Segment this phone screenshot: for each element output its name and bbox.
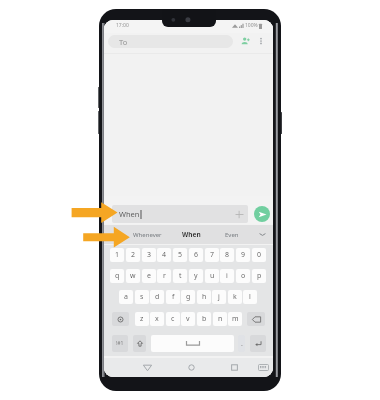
staticText: 5 bbox=[178, 250, 183, 260]
staticText: x bbox=[155, 314, 159, 324]
staticText: 9 bbox=[241, 250, 246, 260]
staticText: z bbox=[140, 314, 144, 324]
button[interactable]: 1 bbox=[110, 248, 124, 262]
staticText: 0 bbox=[257, 250, 262, 260]
button[interactable]: Add recipient bbox=[238, 34, 252, 48]
staticText: 8 bbox=[225, 250, 230, 260]
button[interactable]: shift bbox=[112, 312, 129, 326]
staticText: t bbox=[179, 271, 182, 281]
button[interactable]: dot bbox=[238, 335, 245, 352]
staticText: d bbox=[155, 292, 160, 302]
button[interactable]: Expand suggestions bbox=[256, 225, 269, 244]
button[interactable]: c bbox=[166, 312, 180, 326]
button[interactable]: i bbox=[220, 269, 234, 283]
staticText: m bbox=[232, 314, 239, 324]
button[interactable]: Hide keyboard bbox=[256, 358, 270, 377]
button[interactable]: r bbox=[157, 269, 171, 283]
button[interactable]: 4 bbox=[157, 248, 171, 262]
button[interactable]: 9 bbox=[236, 248, 250, 262]
staticText: When bbox=[182, 230, 201, 239]
staticText: l bbox=[249, 292, 251, 302]
staticText: 17:00 bbox=[116, 22, 129, 29]
button[interactable]: Send bbox=[254, 206, 270, 222]
staticText: When bbox=[119, 209, 140, 219]
button[interactable]: sym bbox=[112, 335, 128, 352]
staticText: c bbox=[171, 314, 175, 324]
staticText: o bbox=[241, 271, 246, 281]
staticText: k bbox=[233, 292, 237, 302]
staticText: 6 bbox=[194, 250, 199, 260]
button[interactable]: x bbox=[150, 312, 164, 326]
button[interactable]: Home bbox=[184, 358, 198, 377]
staticText: j bbox=[218, 292, 220, 302]
button[interactable]: p bbox=[252, 269, 266, 283]
staticText: 4 bbox=[162, 250, 167, 260]
button[interactable]: u bbox=[205, 269, 219, 283]
button[interactable]: More options bbox=[254, 34, 267, 47]
button[interactable]: l bbox=[243, 290, 257, 304]
button[interactable]: k bbox=[228, 290, 242, 304]
staticText: 7 bbox=[210, 250, 215, 260]
button[interactable]: When bbox=[112, 205, 248, 223]
button[interactable]: m bbox=[228, 312, 242, 326]
staticText: w bbox=[130, 271, 136, 281]
staticText: g bbox=[186, 292, 191, 302]
staticText: h bbox=[202, 292, 207, 302]
staticText: b bbox=[202, 314, 207, 324]
button[interactable]: Back bbox=[140, 358, 154, 377]
button[interactable]: q bbox=[110, 269, 124, 283]
button[interactable]: t bbox=[173, 269, 187, 283]
staticText: v bbox=[186, 314, 190, 324]
staticText: 1 bbox=[115, 250, 120, 260]
button[interactable]: d bbox=[150, 290, 164, 304]
button[interactable]: n bbox=[213, 312, 227, 326]
button[interactable]: When bbox=[167, 225, 215, 244]
staticText: s bbox=[140, 292, 144, 302]
button[interactable]: j bbox=[212, 290, 226, 304]
staticText: 100% bbox=[245, 22, 258, 29]
button[interactable] bbox=[151, 335, 234, 352]
staticText: 3 bbox=[147, 250, 152, 260]
staticText: p bbox=[257, 271, 262, 281]
button[interactable]: h bbox=[197, 290, 211, 304]
button[interactable]: g bbox=[181, 290, 195, 304]
button[interactable]: enter bbox=[250, 335, 266, 352]
button[interactable]: 5 bbox=[173, 248, 187, 262]
button[interactable]: Recent apps bbox=[227, 358, 241, 377]
staticText: 2 bbox=[131, 250, 136, 260]
button[interactable]: 0 bbox=[252, 248, 266, 262]
staticText: f bbox=[172, 292, 175, 302]
button[interactable]: To bbox=[108, 35, 233, 48]
staticText: y bbox=[194, 271, 198, 281]
button[interactable]: Even bbox=[208, 225, 256, 244]
button[interactable]: a bbox=[119, 290, 133, 304]
button[interactable]: y bbox=[189, 269, 203, 283]
button[interactable]: 3 bbox=[142, 248, 156, 262]
staticText: e bbox=[147, 271, 151, 281]
button[interactable]: o bbox=[236, 269, 250, 283]
button[interactable]: 6 bbox=[189, 248, 203, 262]
staticText: q bbox=[115, 271, 120, 281]
button[interactable]: 7 bbox=[205, 248, 219, 262]
button[interactable]: f bbox=[166, 290, 180, 304]
button[interactable]: back bbox=[247, 312, 265, 326]
staticText: i bbox=[226, 271, 228, 281]
staticText: To bbox=[119, 37, 128, 47]
button[interactable]: v bbox=[181, 312, 195, 326]
button[interactable]: 2 bbox=[126, 248, 140, 262]
staticText: !#1 bbox=[116, 340, 124, 347]
button[interactable]: e bbox=[142, 269, 156, 283]
button[interactable]: up bbox=[133, 335, 146, 352]
button[interactable]: Whenever bbox=[123, 225, 171, 244]
staticText: . bbox=[241, 339, 243, 349]
staticText: Even bbox=[225, 231, 239, 239]
staticText: a bbox=[124, 292, 128, 302]
staticText: r bbox=[163, 271, 166, 281]
staticText: u bbox=[210, 271, 215, 281]
button[interactable]: 8 bbox=[220, 248, 234, 262]
button[interactable]: w bbox=[126, 269, 140, 283]
button[interactable]: s bbox=[135, 290, 149, 304]
button[interactable]: z bbox=[135, 312, 149, 326]
button[interactable]: b bbox=[197, 312, 211, 326]
staticText: Whenever bbox=[133, 231, 162, 239]
